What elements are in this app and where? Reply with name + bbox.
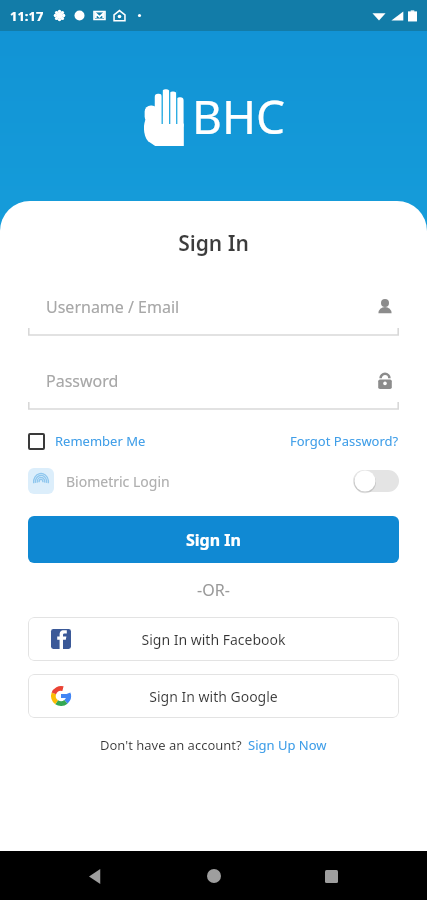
- button[interactable]: Remember Me: [28, 432, 146, 450]
- staticText: BHC: [192, 85, 286, 148]
- staticText: 11:17: [10, 7, 44, 25]
- staticText: Sign In with Google: [72, 687, 355, 706]
- button[interactable]: Sign In with Google: [28, 674, 399, 718]
- button[interactable]: Recent apps: [309, 854, 353, 898]
- staticText: Sign In with Facebook: [72, 630, 355, 649]
- button[interactable]: Back: [74, 854, 118, 898]
- staticText: -OR-: [28, 579, 399, 601]
- button[interactable]: Sign Up Now: [248, 736, 327, 754]
- button[interactable]: Password: [28, 366, 399, 410]
- staticText: Don't have an account?: [100, 736, 242, 754]
- button[interactable]: Sign In: [28, 516, 399, 563]
- other: Password: [375, 371, 395, 391]
- staticText: Username / Email: [46, 296, 375, 318]
- other: Biometric login: [33, 473, 49, 489]
- button[interactable]: Biometric login: [28, 468, 399, 494]
- button[interactable]: Home: [192, 854, 236, 898]
- button[interactable]: Username / Email: [28, 292, 399, 336]
- staticText: Remember Me: [55, 432, 146, 450]
- button[interactable]: Sign In with Facebook: [28, 617, 399, 661]
- staticText: Password: [46, 370, 375, 392]
- button[interactable]: Forgot Password?: [290, 432, 399, 450]
- staticText: Sign In: [28, 229, 399, 258]
- staticText: Sign In: [186, 529, 241, 551]
- staticText: Biometric Login: [66, 472, 170, 491]
- other: Username: [375, 297, 395, 317]
